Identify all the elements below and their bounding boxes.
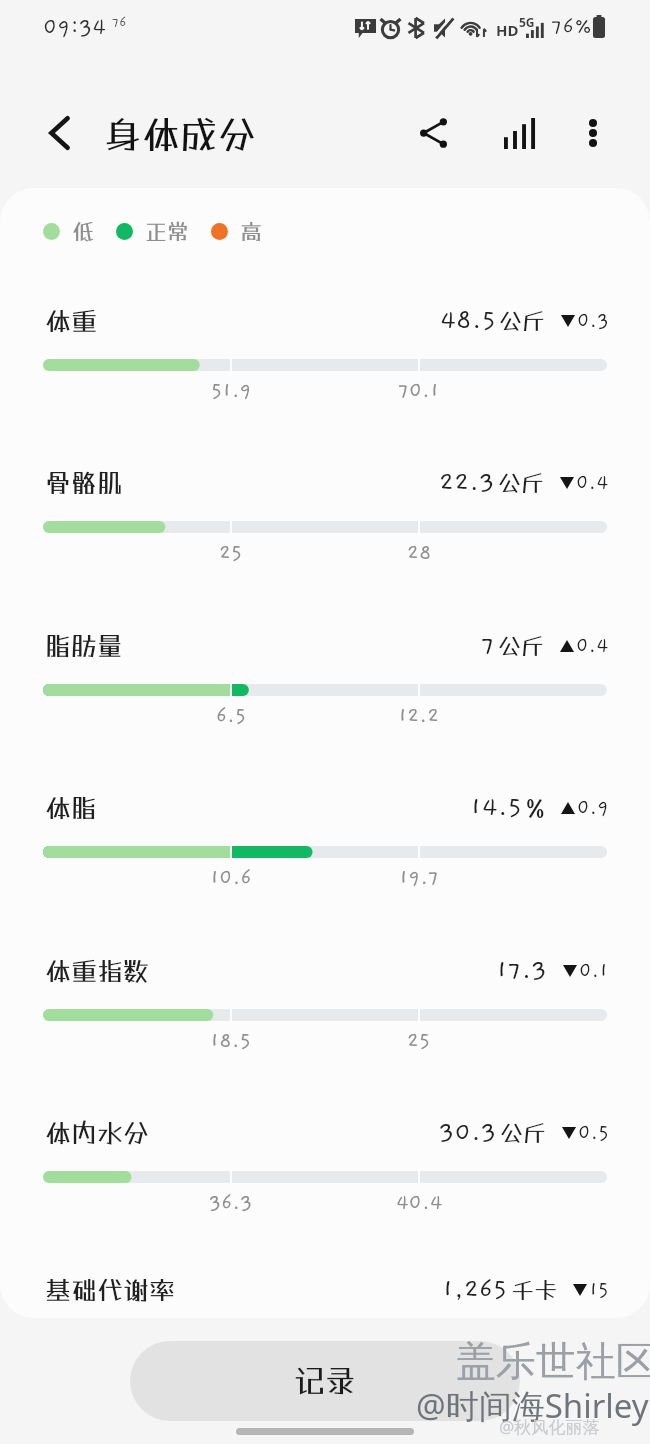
staticText: 0.9 [577,797,609,819]
staticText: 25 [407,1030,431,1053]
staticText: 7 [481,631,495,660]
button[interactable] [0,1257,650,1407]
staticText: 25 [219,542,243,565]
staticText: 30.3 [439,1118,497,1147]
staticText: 记录 [294,1363,356,1400]
staticText: % [526,792,545,823]
staticText: 51.9 [211,380,252,403]
staticText: 40.4 [396,1192,443,1215]
staticText: 盖乐世社区 [456,1336,650,1386]
staticText: 骨骼肌 [45,467,124,498]
staticText: 0.4 [576,635,609,657]
staticText: 0.5 [578,1122,609,1144]
staticText: 1,265 [442,1275,508,1304]
staticText: 36.3 [209,1192,253,1215]
button[interactable] [0,775,650,925]
staticText: 6.5 [216,705,247,728]
staticText: 0.1 [579,960,609,982]
button[interactable] [0,288,650,438]
staticText: 48.5 [440,306,496,335]
staticText: 14.5 [470,793,523,822]
button[interactable]: Share [403,103,463,163]
staticText: 正常 [145,218,190,244]
staticText: 0.3 [577,310,609,332]
staticText: 28 [407,542,432,565]
staticText: 高 [240,218,263,244]
staticText: 基础代谢率 [45,1274,176,1305]
staticText: 千卡 [511,1276,557,1303]
staticText: 12.2 [398,705,440,728]
button[interactable]: 低 [43,212,95,250]
staticText: 0.4 [576,472,609,494]
button[interactable]: More options [563,103,623,163]
staticText: 公斤 [498,632,544,659]
staticText: 09:34 [43,15,107,40]
button[interactable] [0,450,650,600]
button[interactable]: 记录 [130,1341,520,1421]
staticText: 70.1 [398,380,440,403]
staticText: @时间海Shirley [416,1383,649,1428]
button[interactable] [0,1100,650,1250]
button[interactable]: 正常 [116,212,190,250]
staticText: 体重 [45,305,98,336]
staticText: 5G [519,14,535,30]
staticText: 76 [112,15,127,30]
staticText: 体重指数 [45,955,150,986]
staticText: 76% [551,15,593,39]
staticText: 18.5 [210,1030,252,1053]
button[interactable]: Trends [489,103,549,163]
staticText: 公斤 [498,469,544,496]
staticText: 19.7 [399,867,439,890]
staticText: 体内水分 [45,1117,150,1148]
staticText: 体脂 [45,792,98,823]
staticText: 身体成分 [104,112,257,157]
staticText: HD [496,20,519,40]
staticText: 低 [72,218,95,244]
button[interactable] [0,938,650,1088]
button[interactable]: Back [29,103,89,163]
staticText: 17.3 [496,956,547,985]
staticText: 22.3 [439,468,495,497]
staticText: @秋风化丽落 [499,1415,600,1438]
staticText: 脂肪量 [45,630,124,661]
staticText: 公斤 [500,1119,546,1146]
button[interactable] [0,613,650,763]
staticText: 15 [589,1279,609,1301]
staticText: 10.6 [210,867,252,890]
button[interactable]: 高 [211,212,263,250]
staticText: 公斤 [499,307,545,334]
